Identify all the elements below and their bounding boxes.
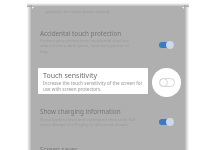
button[interactable]: Show charging information toggle — [159, 118, 174, 126]
staticText: gestures for more power saving — [45, 8, 110, 14]
staticText: Show charging information — [40, 107, 121, 116]
staticText: Accidental touch protection — [40, 29, 122, 38]
button[interactable]: Touch sensitivity toggle — [152, 68, 181, 97]
staticText: Show battery level and estimated time un… — [40, 116, 135, 128]
button[interactable]: Accidental touch protection — [32, 27, 184, 60]
button[interactable]: Touch sensitivity — [38, 68, 148, 94]
staticText: Touch sensitivity — [43, 71, 98, 81]
staticText: Increase the touch sensitivity of the sc… — [43, 80, 143, 92]
button[interactable]: Accidental touch protection toggle — [159, 41, 174, 49]
staticText: Screen saver — [40, 145, 78, 150]
button[interactable]: Screen saver — [32, 143, 184, 150]
button[interactable]: Show charging information — [32, 105, 184, 133]
staticText: Protect your phone from accidental touch… — [40, 37, 130, 55]
